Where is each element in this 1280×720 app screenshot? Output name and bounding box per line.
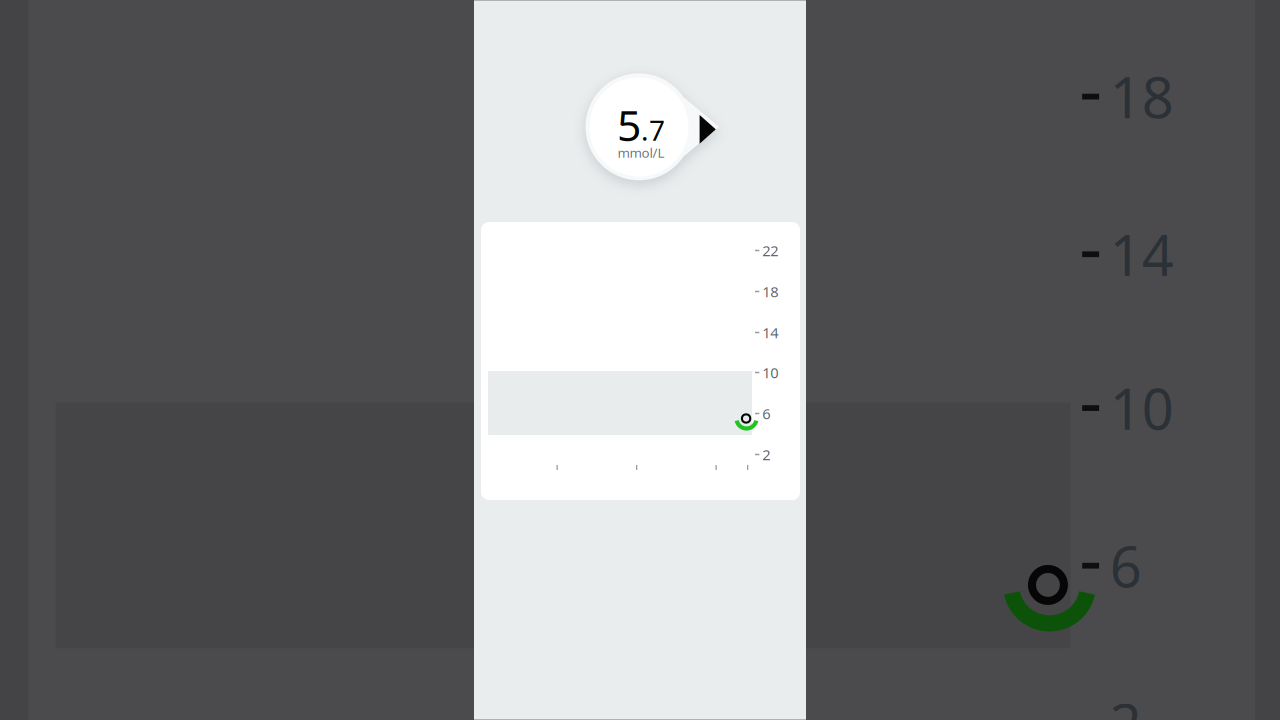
staticText: 14 xyxy=(762,323,778,342)
staticText: 18 xyxy=(762,282,778,301)
staticText: mmol/L xyxy=(617,144,664,161)
button[interactable]: Glucose history chart xyxy=(29,0,1255,720)
staticText: 10 xyxy=(762,363,778,382)
staticText: .7 xyxy=(641,111,665,148)
staticText: 6 xyxy=(1110,528,1142,603)
staticText: 18 xyxy=(1110,59,1174,134)
staticText: 2 xyxy=(762,445,770,464)
button[interactable]: Glucose history chart xyxy=(481,222,800,500)
staticText: 6 xyxy=(762,404,770,423)
staticText: 2 xyxy=(1110,686,1142,720)
staticText: 22 xyxy=(762,241,778,260)
staticText: 5 xyxy=(617,96,641,153)
staticText: 14 xyxy=(1110,217,1174,291)
button[interactable]: Current glucose 5.7 millimoles per litre… xyxy=(474,60,734,190)
staticText: 10 xyxy=(1110,371,1174,445)
